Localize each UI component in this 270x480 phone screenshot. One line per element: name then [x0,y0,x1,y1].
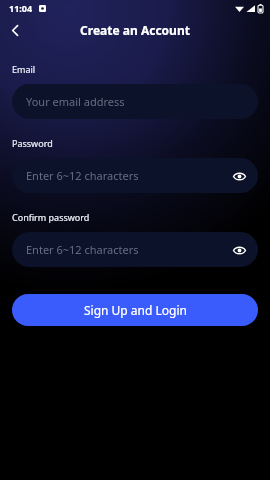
button[interactable]: Enter 6~12 characters [12,158,258,193]
staticText: Enter 6~12 characters [26,168,139,183]
staticText: Your email address [26,94,125,109]
button[interactable]: Your email address [12,84,258,119]
button[interactable]: Show password [228,165,250,187]
staticText: Confirm password [12,211,90,223]
staticText: Sign Up and Login [84,302,187,318]
staticText: Create an Account [80,22,190,38]
staticText: Enter 6~12 characters [26,242,139,257]
staticText: 11:04 [9,2,33,14]
button[interactable]: Back [0,16,30,44]
button[interactable]: Sign Up and Login [12,294,258,326]
button[interactable]: Show confirm password [228,239,250,261]
staticText: Password [12,137,53,149]
button[interactable]: Enter 6~12 characters [12,232,258,267]
staticText: Email [12,63,36,75]
